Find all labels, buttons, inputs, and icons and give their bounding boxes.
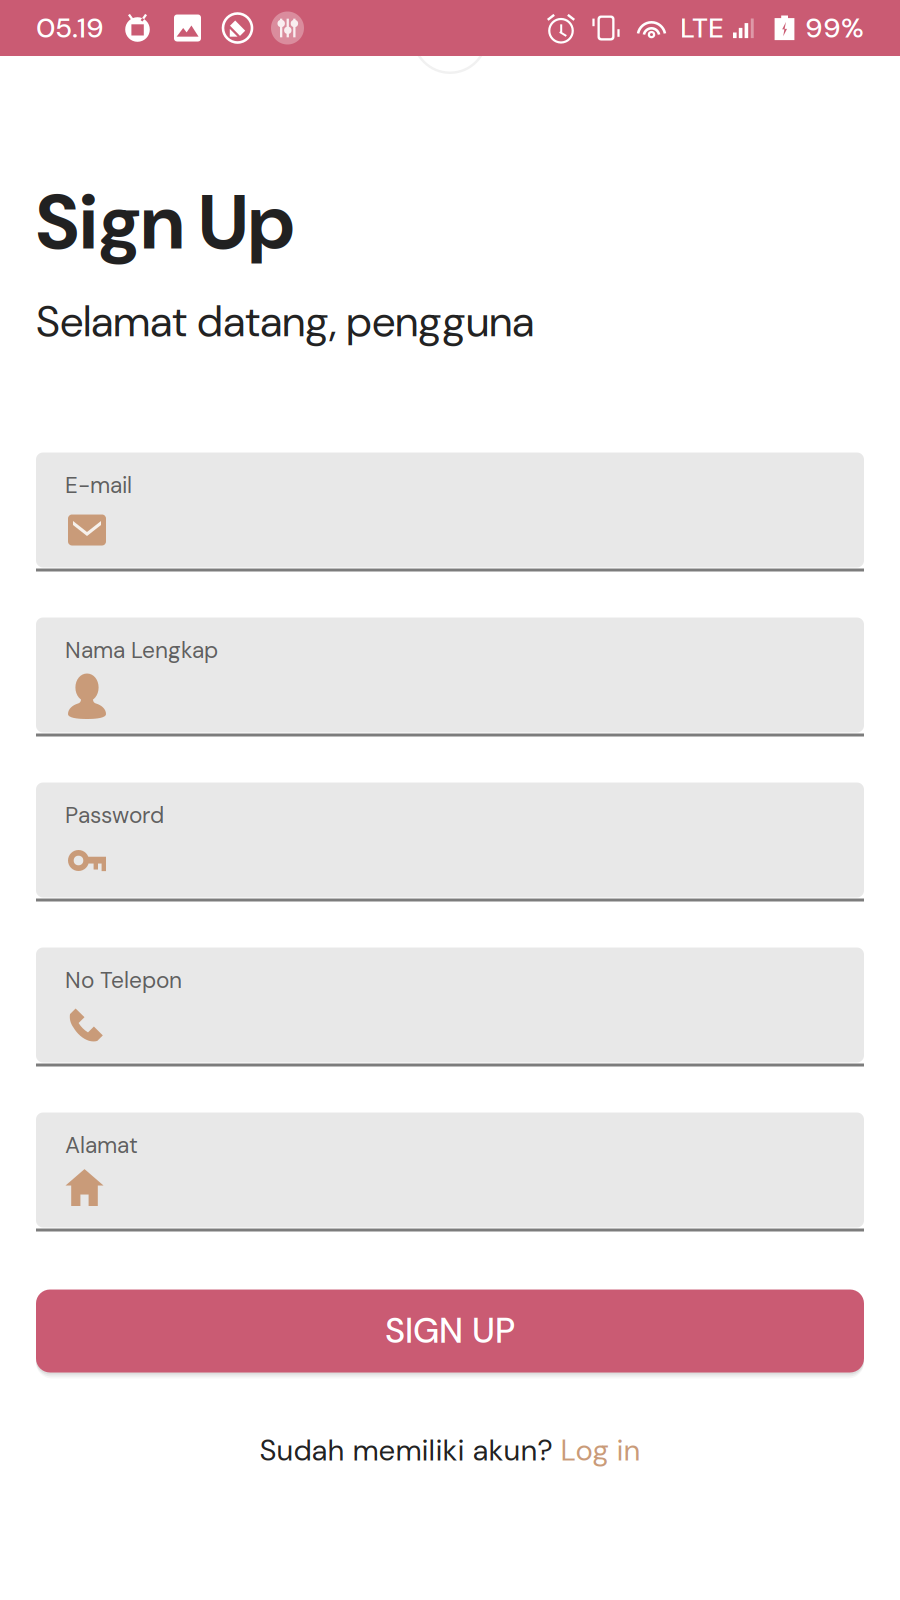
button[interactable]: Nama Lengkap xyxy=(36,617,864,736)
staticText: No Telepon xyxy=(65,965,182,995)
staticText: Selamat datang, pengguna xyxy=(36,294,534,350)
button[interactable]: Password xyxy=(36,782,864,901)
staticText: E-mail xyxy=(65,470,132,500)
button[interactable]: SIGN UP xyxy=(36,1289,864,1382)
staticText: SIGN UP xyxy=(385,1308,515,1353)
staticText: Alamat xyxy=(65,1130,138,1160)
staticText: 05.19 xyxy=(36,10,104,46)
staticText: Password xyxy=(65,800,164,830)
staticText: Sudah memiliki akun? xyxy=(259,1431,560,1470)
button[interactable]: No Telepon xyxy=(36,947,864,1066)
button[interactable]: Log in xyxy=(560,1431,640,1470)
button[interactable]: E-mail xyxy=(36,452,864,571)
staticText: 99% xyxy=(805,10,864,46)
staticText: Nama Lengkap xyxy=(65,635,218,665)
staticText: LTE xyxy=(680,10,724,46)
staticText: Sign Up xyxy=(36,173,294,272)
button[interactable]: Alamat xyxy=(36,1112,864,1231)
staticText: Log in xyxy=(560,1431,640,1470)
